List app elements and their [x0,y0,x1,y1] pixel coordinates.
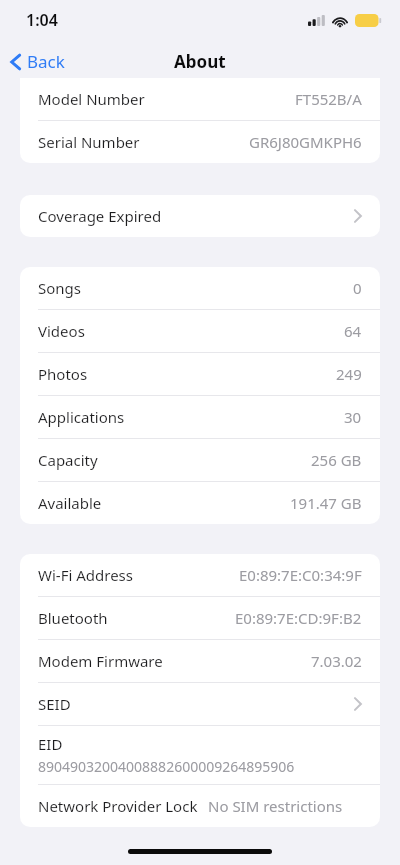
staticText: Back [27,50,65,73]
staticText: Applications [38,407,125,427]
staticText: 191.47 GB [290,493,362,513]
button[interactable]: Network Provider Lock [20,785,380,827]
button[interactable]: Applications [20,396,380,439]
button[interactable]: Capacity [20,439,380,482]
staticText: 7.03.02 [311,651,362,671]
staticText: Photos [38,364,88,384]
staticText: SEID [38,694,71,714]
staticText: E0:89:7E:C0:34:9F [239,565,362,585]
staticText: Songs [38,278,81,298]
staticText: Available [38,493,102,513]
button[interactable]: Songs [20,267,380,310]
button[interactable]: Videos [20,310,380,353]
staticText: Network Provider Lock [38,796,198,816]
button[interactable]: Photos [20,353,380,396]
staticText: GR6J80GMKPH6 [249,132,362,152]
staticText: 64 [344,321,362,341]
other: Open Coverage Expired [354,209,362,223]
staticText: EID [38,734,63,754]
staticText: 256 GB [311,450,362,470]
button[interactable]: Modem Firmware [20,640,380,683]
button[interactable]: Coverage Expired [20,195,380,237]
staticText: FT552B/A [295,89,362,109]
button[interactable]: EID [20,726,380,785]
staticText: 1:04 [26,9,58,31]
button[interactable]: SEID [20,683,380,726]
staticText: 89049032004008882600009264895906 [38,757,295,776]
other: Back [10,53,21,71]
button[interactable]: Back [0,46,75,77]
staticText: 30 [344,407,362,427]
button[interactable]: Available [20,482,380,524]
staticText: 0 [353,278,362,298]
staticText: No SIM restrictions [208,796,343,816]
staticText: Coverage Expired [38,206,162,226]
staticText: Capacity [38,450,98,470]
other: Open SEID [354,697,362,711]
staticText: Serial Number [38,132,140,152]
staticText: Modem Firmware [38,651,163,671]
button[interactable]: Bluetooth [20,597,380,640]
button[interactable]: Serial Number [20,121,380,163]
staticText: Videos [38,321,85,341]
staticText: About [174,50,226,73]
button[interactable]: Model Number [20,78,380,121]
staticText: 249 [336,364,362,384]
staticText: Model Number [38,89,145,109]
staticText: Wi-Fi Address [38,565,133,585]
staticText: Bluetooth [38,608,108,628]
staticText: E0:89:7E:CD:9F:B2 [235,608,362,628]
button[interactable]: Wi-Fi Address [20,554,380,597]
